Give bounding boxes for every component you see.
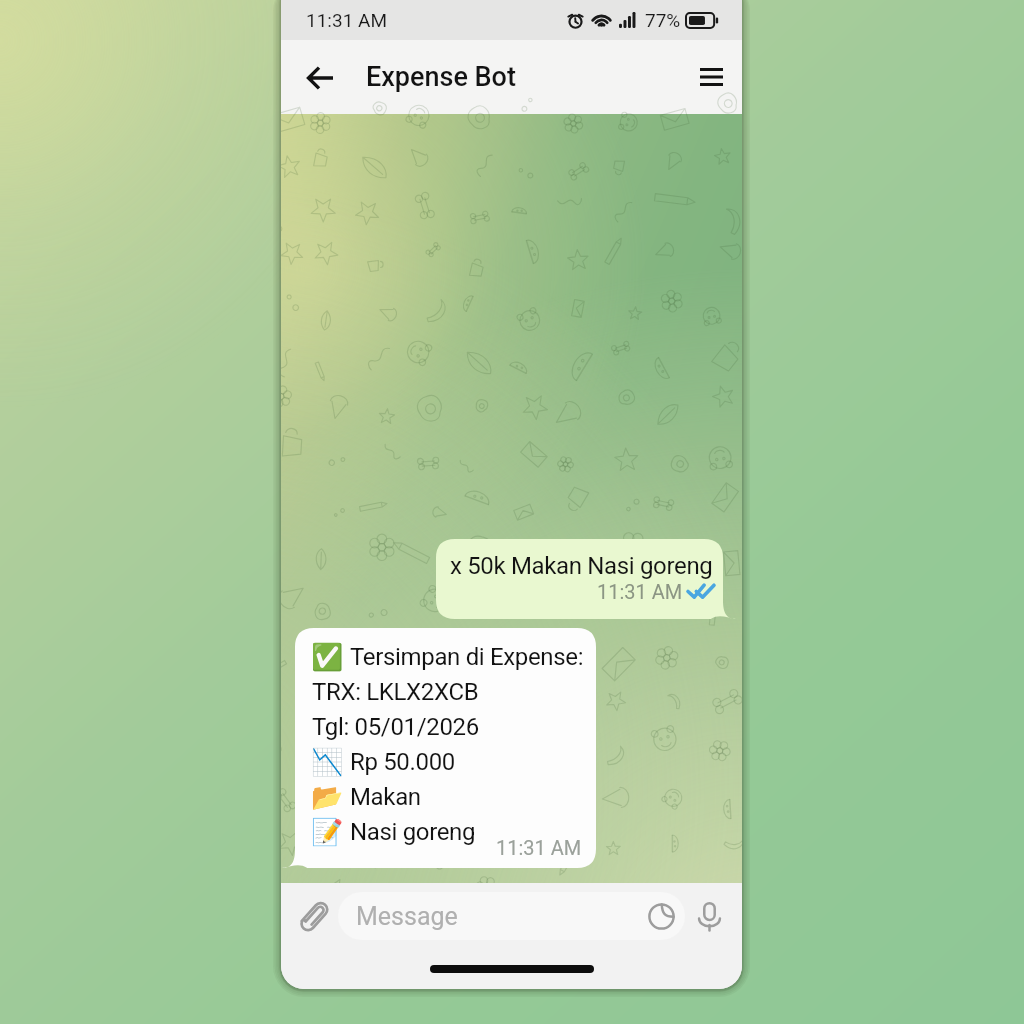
staticText: ✅ xyxy=(311,642,344,672)
staticText: 📂 xyxy=(311,782,344,812)
button[interactable]: Menu xyxy=(682,48,740,106)
staticText: Rp 50.000 xyxy=(350,748,455,776)
staticText: Expense Bot xyxy=(366,61,516,93)
button[interactable]: Back xyxy=(292,49,349,106)
staticText: 📝 xyxy=(311,817,344,847)
staticText: Tgl: 05/01/2026 xyxy=(312,713,479,741)
staticText: TRX: LKLX2XCB xyxy=(312,678,479,706)
button[interactable]: Attach file xyxy=(290,892,338,940)
staticText: x 50k Makan Nasi goreng xyxy=(450,552,713,580)
button[interactable]: x 50k Makan Nasi goreng xyxy=(436,539,736,619)
button[interactable]: ✅ xyxy=(282,628,596,868)
staticText: 11:31 AM xyxy=(306,9,388,31)
button[interactable]: Voice message xyxy=(685,892,733,940)
staticText: Nasi goreng xyxy=(350,818,476,846)
staticText: 11:31 AM xyxy=(597,580,683,603)
staticText: 77% xyxy=(645,9,681,31)
button[interactable]: Stickers xyxy=(640,895,682,937)
staticText: Makan xyxy=(350,783,421,811)
button[interactable]: Expense Bot xyxy=(366,40,682,114)
staticText: Tersimpan di Expense: xyxy=(350,643,584,671)
staticText: Message xyxy=(356,902,458,931)
button[interactable]: Message input xyxy=(338,892,685,940)
staticText: 11:31 AM xyxy=(496,836,582,859)
staticText: 📉 xyxy=(311,747,344,777)
